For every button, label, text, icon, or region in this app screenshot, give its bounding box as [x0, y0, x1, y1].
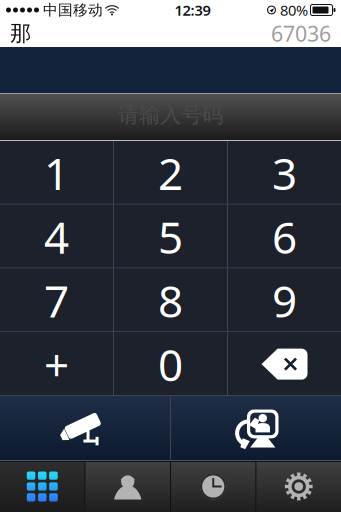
button[interactable]: 0	[114, 332, 227, 396]
staticText: +	[44, 335, 69, 393]
staticText: 中国移动	[39, 1, 103, 19]
staticText: 7	[44, 271, 69, 330]
staticText: 12:39	[174, 0, 210, 20]
staticText: 6	[272, 207, 297, 266]
staticText: 请输入号码	[118, 102, 223, 128]
button[interactable]: 8	[114, 268, 227, 332]
button[interactable]: 4	[0, 205, 113, 269]
staticText: 3	[272, 144, 297, 202]
staticText: 80%	[276, 0, 308, 20]
button[interactable]: Keypad	[0, 461, 84, 512]
button[interactable]: +	[0, 332, 113, 396]
button[interactable]: Settings	[256, 461, 341, 512]
staticText: 0	[158, 335, 183, 393]
button[interactable]: 6	[228, 205, 341, 269]
staticText: 4	[44, 207, 69, 266]
button[interactable]: 9	[228, 268, 341, 332]
staticText: 8	[158, 271, 183, 330]
button[interactable]: 5	[114, 205, 227, 269]
button[interactable]: 3	[228, 141, 341, 205]
button[interactable]: 7	[0, 268, 113, 332]
staticText: 5	[158, 207, 183, 266]
staticText: 1	[44, 144, 69, 202]
button[interactable]: Delete	[228, 332, 341, 396]
button[interactable]: 2	[114, 141, 227, 205]
staticText: 67036	[271, 19, 331, 48]
staticText: 那	[10, 20, 31, 47]
button[interactable]: Surveillance camera	[0, 396, 170, 461]
button[interactable]: Recents	[171, 461, 255, 512]
staticText: 2	[158, 144, 183, 202]
button[interactable]: 1	[0, 141, 113, 205]
button[interactable]: Contacts	[85, 461, 170, 512]
staticText: 9	[272, 271, 297, 330]
button[interactable]: Video call	[171, 396, 341, 461]
